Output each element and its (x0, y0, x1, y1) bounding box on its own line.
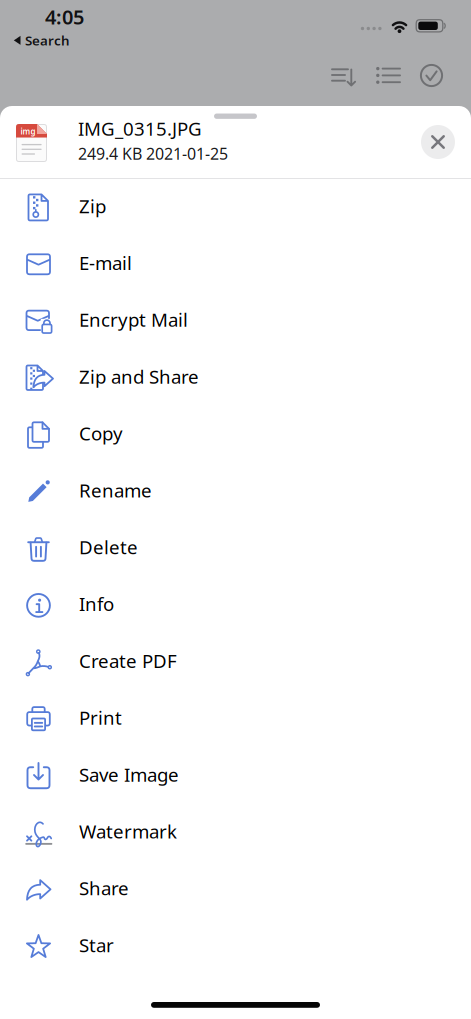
button[interactable]: Copy (0, 406, 471, 463)
button[interactable]: Delete (0, 520, 471, 577)
button[interactable]: Print (0, 691, 471, 748)
staticText: 249.4 KB 2021-01-25 (78, 143, 228, 164)
button[interactable]: Info (0, 577, 471, 634)
button[interactable]: Save Image (0, 747, 471, 804)
staticText: IMG_0315.JPG (78, 116, 202, 141)
staticText: Info (79, 591, 114, 616)
staticText: E-mail (79, 250, 132, 275)
staticText: Watermark (79, 819, 177, 844)
button[interactable]: Watermark (0, 804, 471, 861)
staticText: Search (25, 31, 70, 49)
button[interactable]: Back to Search (13, 31, 70, 49)
staticText: Print (79, 705, 122, 730)
staticText: Encrypt Mail (79, 307, 188, 332)
button[interactable]: Star (0, 918, 471, 975)
button[interactable]: Zip and Share (0, 350, 471, 406)
staticText: 4:05 (45, 3, 84, 30)
button[interactable]: Select (420, 64, 443, 87)
staticText: Star (79, 933, 114, 957)
button[interactable]: E-mail (0, 236, 471, 293)
button[interactable]: List view (376, 66, 401, 85)
button[interactable]: Create PDF (0, 634, 471, 691)
button[interactable]: Encrypt Mail (0, 293, 471, 350)
staticText: Zip and Share (79, 364, 199, 389)
staticText: img (20, 126, 35, 137)
staticText: Copy (79, 421, 123, 446)
staticText: Delete (79, 535, 138, 559)
staticText: Share (79, 876, 129, 900)
staticText: Rename (79, 478, 152, 503)
button[interactable]: Close (421, 125, 455, 159)
button[interactable]: Zip (0, 179, 471, 236)
button[interactable]: Sort (331, 65, 356, 86)
button[interactable]: Rename (0, 463, 471, 520)
button[interactable]: Share (0, 861, 471, 918)
staticText: Create PDF (79, 648, 177, 673)
staticText: Zip (79, 193, 106, 218)
staticText: Save Image (79, 762, 179, 787)
